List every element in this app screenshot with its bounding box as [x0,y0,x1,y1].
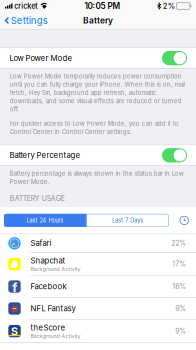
staticText: Facebook [30,282,66,291]
staticText: Settings [11,15,48,26]
staticText: 9% [175,327,186,335]
button[interactable]: Last 24 Hours [4,214,86,227]
staticText: 10:05 PM [85,1,121,11]
button[interactable]: Low Power Mode [0,48,196,68]
button[interactable]: Last 7 Days [87,214,169,227]
button[interactable]: Snapchat [0,253,196,275]
staticText: Low Power Mode temporarily reduces power… [10,73,185,113]
staticText: NFL Fantasy [30,304,75,313]
staticText: Safari [30,239,51,248]
staticText: Last 24 Hours [26,217,63,224]
button[interactable]: Safari [0,234,196,252]
staticText: 9% [175,304,186,313]
staticText: Battery Percentage [9,151,80,160]
staticText: f [12,280,17,295]
staticText: For quicker access to Low Power Mode, yo… [10,120,179,135]
staticText: 2% [163,2,175,10]
staticText: Last 7 Days [112,217,143,224]
staticText: cricket [14,2,38,10]
button[interactable]: Battery Percentage [0,145,196,165]
staticText: Low Power Mode [9,53,72,63]
staticText: BATTERY USAGE [10,194,65,203]
staticText: Battery percentage is always shown in th… [10,170,184,185]
staticText: Background Activity [30,266,80,272]
button[interactable]: NFL Fantasy [0,298,196,319]
staticText: 16% [172,282,186,291]
staticText: theScore [30,323,65,332]
staticText: Background Activity [30,333,80,339]
staticText: S [11,325,18,338]
button[interactable]: S [0,320,196,342]
button[interactable]: f [0,276,196,297]
staticText: Snapchat [30,256,65,265]
button[interactable]: Settings [0,12,53,29]
staticText: 17% [172,260,186,268]
staticText: 22% [171,239,186,247]
button[interactable]: Battery usage by time [180,216,188,225]
staticText: Battery [83,15,113,25]
